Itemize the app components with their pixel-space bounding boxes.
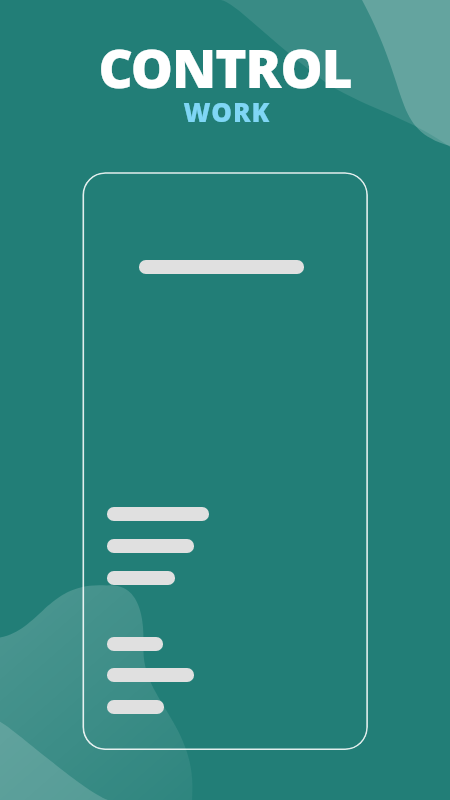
button[interactable] xyxy=(82,172,368,750)
staticText: CONTROL xyxy=(0,31,450,103)
staticText: WORK xyxy=(2,94,450,129)
